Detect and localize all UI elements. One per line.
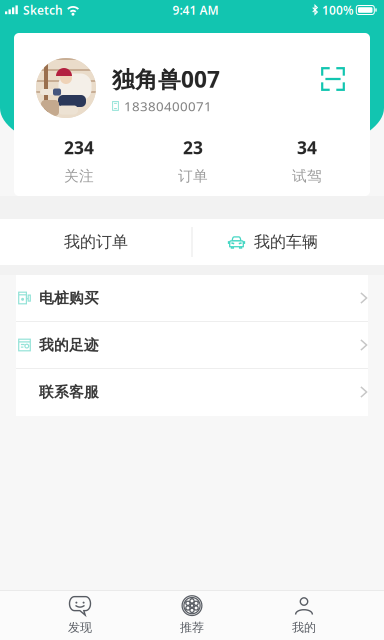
button[interactable]: 扫一扫 (315, 61, 351, 97)
staticText: 试驾 (292, 167, 322, 185)
staticText: 我的 (292, 620, 316, 635)
staticText: 独角兽007 (112, 64, 220, 94)
staticText: 我的车辆 (254, 232, 318, 252)
staticText: Sketch (23, 2, 63, 18)
staticText: 关注 (64, 167, 94, 185)
staticText: 订单 (178, 167, 208, 185)
staticText: 推荐 (180, 620, 204, 635)
staticText: 我的足迹 (39, 336, 99, 354)
button[interactable]: 34 (250, 136, 364, 191)
staticText: 发现 (68, 620, 92, 635)
staticText: 9:41 AM (172, 2, 218, 18)
staticText: 我的订单 (64, 232, 128, 252)
button[interactable]: 我的车辆 (192, 219, 384, 265)
staticText: 100% (322, 2, 354, 18)
button[interactable]: 我的 (248, 590, 360, 640)
button[interactable]: 234 (22, 136, 136, 191)
button[interactable]: 联系客服 (16, 369, 368, 416)
staticText: 电桩购买 (39, 289, 99, 307)
staticText: 23 (183, 136, 203, 159)
staticText: 联系客服 (39, 383, 99, 401)
button[interactable]: 我的订单 (0, 219, 192, 265)
button[interactable]: 推荐 (136, 590, 248, 640)
staticText: 234 (64, 136, 94, 159)
button[interactable]: 电桩购买 (16, 275, 368, 322)
button[interactable]: 23 (136, 136, 250, 191)
staticText: 18380400071 (124, 97, 212, 115)
button[interactable]: 我的足迹 (16, 322, 368, 369)
button[interactable]: 发现 (24, 590, 136, 640)
staticText: 34 (297, 136, 317, 159)
